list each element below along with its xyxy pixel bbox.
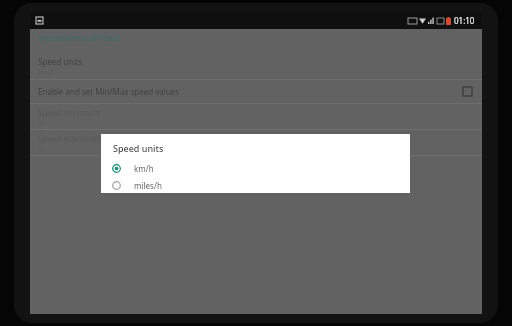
button[interactable]: Enable and set Min/Max speed values	[30, 80, 482, 103]
staticText: km/h	[134, 163, 154, 174]
button[interactable]: km/h	[101, 159, 410, 177]
staticText: Speed units	[38, 56, 83, 67]
staticText: SPEEDOMETER SETTINGS	[38, 34, 122, 44]
other: Notification	[36, 17, 43, 24]
button[interactable]: miles/h	[101, 177, 410, 193]
staticText: miles/h	[134, 180, 162, 191]
button[interactable]: Speed maximum	[30, 130, 482, 155]
staticText: Enable and set Min/Max speed values	[38, 86, 180, 97]
staticText: Speed units	[113, 142, 164, 154]
staticText: Speed maximum	[38, 133, 102, 144]
staticText: 01:10	[454, 15, 475, 26]
